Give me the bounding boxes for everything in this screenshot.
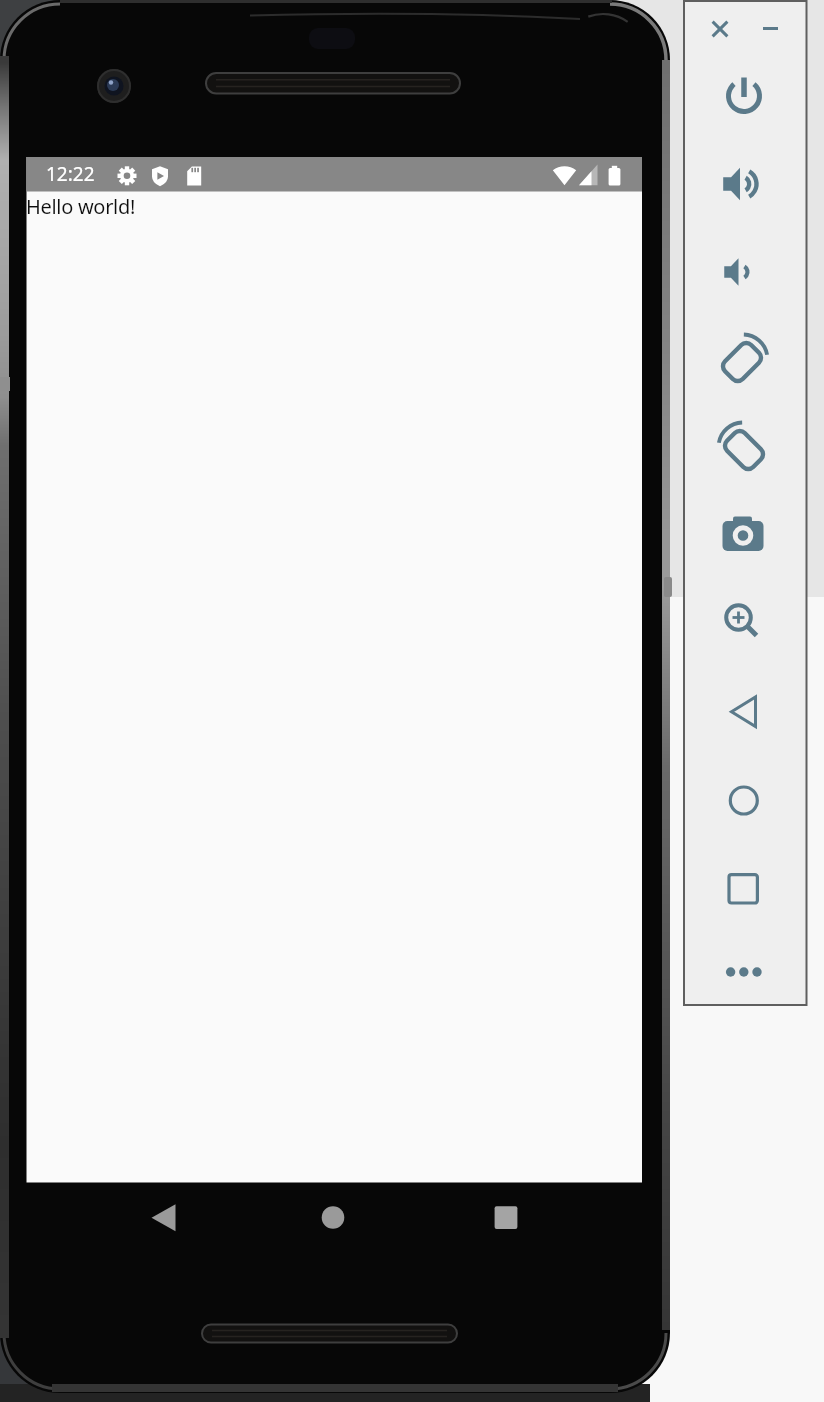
button[interactable]	[137, 1191, 191, 1245]
button[interactable]	[717, 773, 771, 827]
button[interactable]	[753, 12, 787, 46]
button[interactable]	[717, 509, 771, 563]
button[interactable]	[717, 157, 771, 211]
button[interactable]	[717, 861, 771, 915]
staticText: Hello world!	[26, 193, 136, 220]
staticText: 12:22	[46, 161, 95, 187]
button[interactable]	[306, 1191, 360, 1245]
button[interactable]	[479, 1191, 533, 1245]
button[interactable]	[717, 685, 771, 739]
button[interactable]	[703, 12, 737, 46]
button[interactable]	[717, 245, 771, 299]
button[interactable]	[717, 333, 771, 387]
button[interactable]	[717, 597, 771, 651]
button[interactable]	[717, 421, 771, 475]
button[interactable]	[717, 69, 771, 123]
button[interactable]	[717, 947, 771, 1001]
